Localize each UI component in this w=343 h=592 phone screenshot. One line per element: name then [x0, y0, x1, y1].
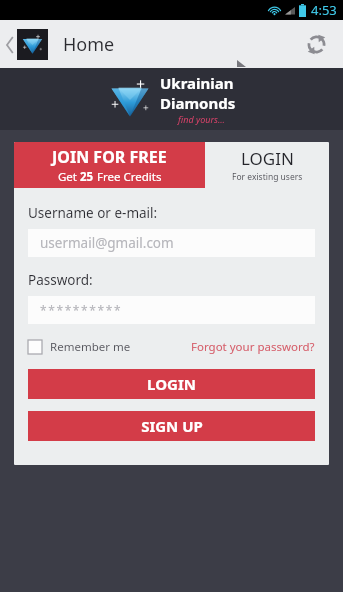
staticText: LOGIN	[147, 374, 196, 394]
button[interactable]: Remember me	[28, 337, 131, 357]
staticText: Free Credits	[94, 169, 162, 185]
staticText: For existing users	[232, 171, 303, 183]
button[interactable]: LOGIN	[205, 142, 329, 188]
staticText: Ukrainian	[160, 73, 234, 93]
staticText: 25	[80, 169, 94, 185]
staticText: usermail@gmail.com	[40, 234, 174, 252]
button[interactable]: Refresh	[297, 25, 335, 63]
button[interactable]: **********	[28, 296, 315, 324]
button[interactable]: LOGIN	[28, 369, 315, 399]
button[interactable]: usermail@gmail.com	[28, 229, 315, 257]
staticText: JOIN FOR FREE	[52, 146, 167, 168]
staticText: Password:	[28, 271, 93, 289]
button[interactable]: Up	[4, 29, 50, 60]
button[interactable]: JOIN FOR FREE	[14, 142, 205, 188]
button[interactable]: Forgot your password?	[191, 337, 315, 357]
staticText: LOGIN	[241, 147, 294, 170]
staticText: 4:53	[311, 1, 337, 19]
staticText: Get	[58, 169, 80, 185]
staticText: **********	[40, 302, 123, 318]
staticText: Home	[63, 32, 115, 57]
staticText: Diamonds	[160, 93, 236, 113]
staticText: Remember me	[50, 339, 131, 355]
staticText: find yours...	[178, 113, 225, 125]
staticText: SIGN UP	[141, 416, 203, 436]
button[interactable]: SIGN UP	[28, 411, 315, 441]
staticText: Forgot your password?	[191, 339, 315, 355]
staticText: Username or e-mail:	[28, 204, 158, 222]
